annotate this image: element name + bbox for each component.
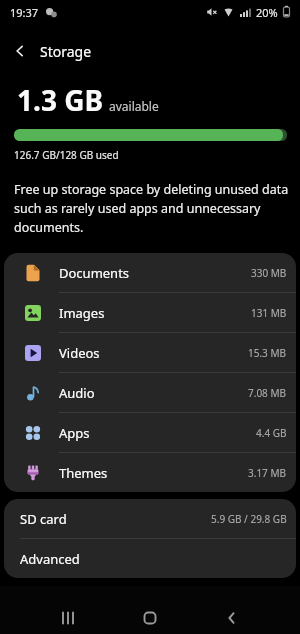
staticText: Storage <box>40 42 92 61</box>
button[interactable]: Videos <box>4 333 296 372</box>
staticText: 126.7 GB/128 GB used <box>14 148 119 162</box>
staticText: 20% <box>256 5 278 20</box>
staticText: available <box>109 98 159 114</box>
button[interactable]: Images <box>4 293 296 332</box>
staticText: Apps <box>59 424 90 442</box>
button[interactable] <box>8 39 32 63</box>
staticText: 1.3 GB <box>17 81 104 119</box>
staticText: 4.4 GB <box>256 426 287 440</box>
button[interactable]: SD card <box>4 499 296 538</box>
button[interactable]: Audio <box>4 373 296 412</box>
staticText: Videos <box>59 344 100 362</box>
staticText: 15.3 MB <box>248 346 287 360</box>
staticText: 7.08 MB <box>248 386 287 400</box>
button[interactable]: Documents <box>4 253 296 292</box>
staticText: Free up storage space by deleting unused… <box>14 181 289 236</box>
button[interactable]: Themes <box>4 453 296 492</box>
button[interactable]: Apps <box>4 413 296 452</box>
button[interactable] <box>129 611 171 625</box>
staticText: 330 MB <box>251 266 287 280</box>
staticText: Themes <box>59 464 108 482</box>
button[interactable] <box>47 611 89 625</box>
staticText: Images <box>59 304 105 322</box>
staticText: SD card <box>20 510 67 528</box>
staticText: Documents <box>59 264 130 282</box>
staticText: Audio <box>59 384 95 402</box>
button[interactable]: Advanced <box>4 539 296 578</box>
button[interactable] <box>211 611 253 625</box>
staticText: 19:37 <box>10 5 39 20</box>
staticText: 3.17 MB <box>248 466 287 480</box>
staticText: 5.9 GB / 29.8 GB <box>211 512 287 526</box>
staticText: Advanced <box>20 550 80 568</box>
staticText: 131 MB <box>251 306 287 320</box>
